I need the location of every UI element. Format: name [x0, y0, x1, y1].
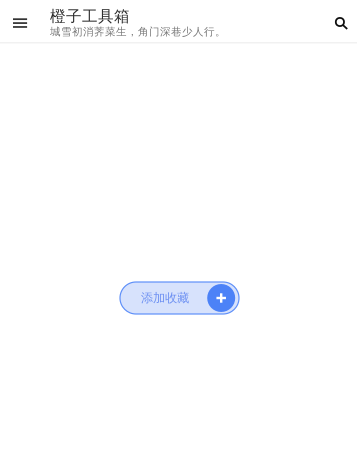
button[interactable]: Menu [0, 0, 36, 44]
staticText: 城雪初消荠菜生，角门深巷少人行。 [50, 25, 226, 38]
staticText: 橙子工具箱 [50, 6, 130, 26]
button[interactable]: 添加收藏 [120, 282, 239, 314]
button[interactable]: Search [325, 0, 357, 44]
staticText: 添加收藏 [141, 290, 189, 306]
